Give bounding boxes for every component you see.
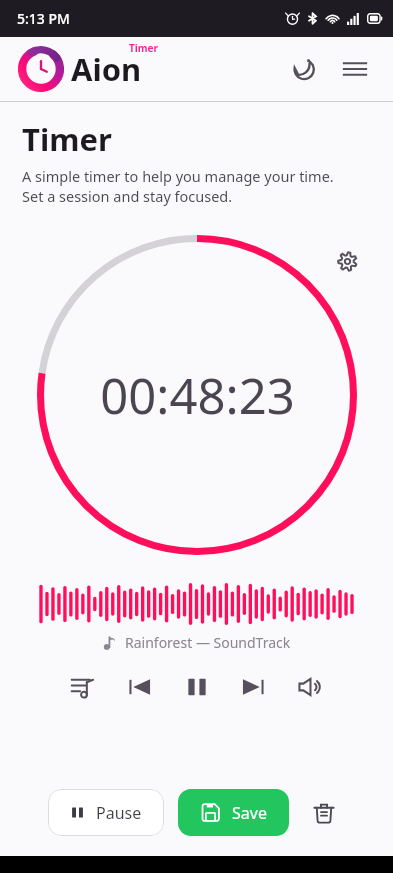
staticText: Timer [22,118,112,160]
button[interactable]: Pause [48,789,164,836]
button[interactable]: Menu [335,49,375,89]
button[interactable]: Previous [119,666,161,708]
staticText: Timer [129,41,158,55]
button[interactable]: Pause [176,666,218,708]
button[interactable]: Dark mode [285,49,325,89]
button[interactable]: Next [232,666,274,708]
button[interactable]: Delete [303,792,345,834]
button[interactable]: Volume [289,666,331,708]
staticText: Save [232,802,267,824]
button[interactable]: Save [178,789,289,836]
staticText: A simple timer to help you manage your t… [22,166,334,207]
staticText: 5:13 PM [17,9,70,28]
button[interactable]: Playlist [62,666,104,708]
staticText: 00:48:23 [100,362,295,429]
staticText: Aion [71,48,142,90]
button[interactable]: Timer settings [329,243,365,279]
staticText: Rainforest — SoundTrack [125,633,291,652]
staticText: Pause [96,802,142,824]
